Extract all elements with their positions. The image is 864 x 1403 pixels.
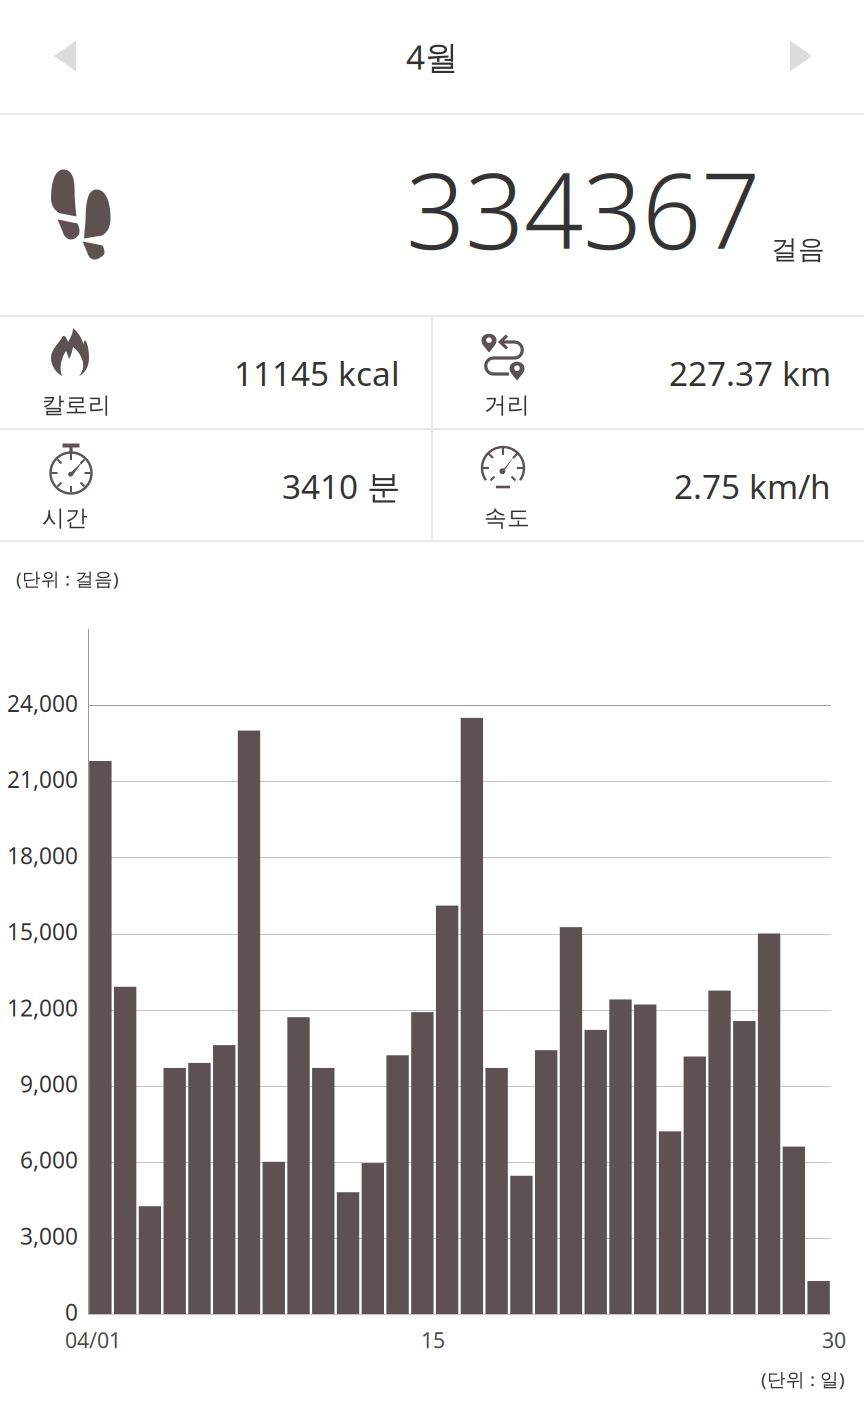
staticText: 11145 kcal	[234, 351, 400, 395]
staticText: 속도	[484, 504, 530, 532]
staticText: (단위 : 일)	[761, 1367, 845, 1391]
staticText: 04/01	[65, 1326, 121, 1354]
staticText: 21,000	[7, 764, 78, 794]
staticText: 6,000	[20, 1145, 78, 1175]
button[interactable]: 속도	[432, 430, 864, 542]
button[interactable]: 칼로리	[0, 317, 432, 429]
staticText: 0	[65, 1297, 78, 1327]
staticText: 15,000	[7, 916, 78, 946]
staticText: 15	[421, 1326, 445, 1354]
staticText: 3,000	[20, 1221, 78, 1251]
button[interactable]: Previous month	[20, 26, 110, 86]
staticText: 칼로리	[42, 391, 111, 419]
staticText: 227.37 km	[669, 351, 831, 395]
staticText: 12,000	[7, 992, 78, 1023]
button[interactable]: 거리	[432, 317, 864, 429]
staticText: 18,000	[7, 840, 78, 870]
staticText: 2.75 km/h	[674, 464, 831, 508]
staticText: 시간	[42, 504, 88, 532]
staticText: 4월	[406, 34, 458, 79]
button[interactable]: 시간	[0, 430, 432, 542]
staticText: (단위 : 걸음)	[16, 566, 119, 591]
button[interactable]: Next month	[756, 26, 846, 86]
staticText: 거리	[484, 391, 530, 419]
button[interactable]: 4월	[282, 0, 582, 113]
staticText: 30	[822, 1326, 846, 1354]
staticText: 334367	[406, 140, 760, 278]
staticText: 24,000	[7, 688, 78, 718]
staticText: 3410 분	[282, 464, 400, 508]
staticText: 9,000	[20, 1069, 78, 1099]
staticText: 걸음	[771, 233, 825, 266]
